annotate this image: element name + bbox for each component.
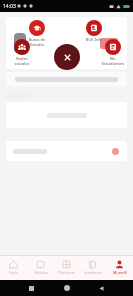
staticText: Académico bbox=[84, 270, 102, 275]
button[interactable]: Noticias bbox=[28, 255, 53, 280]
button[interactable]: Atrás bbox=[99, 286, 104, 291]
button[interactable]: Rutas de Estudio bbox=[20, 20, 54, 47]
staticText: 14:03 bbox=[3, 3, 16, 10]
button[interactable] bbox=[6, 141, 127, 161]
button[interactable]: BUS Info bbox=[77, 20, 111, 42]
button[interactable]: Inicio bbox=[64, 285, 70, 291]
staticText: Redes sociales bbox=[5, 56, 39, 66]
staticText: BUS Info bbox=[77, 37, 111, 42]
button[interactable]: Directorio bbox=[54, 255, 79, 280]
staticText: Inicio bbox=[9, 270, 18, 275]
button[interactable]: Redes sociales bbox=[5, 39, 39, 66]
button[interactable]: No. Estudiantes bbox=[96, 39, 130, 66]
staticText: Mi perfil bbox=[113, 270, 127, 275]
staticText: Noticias bbox=[34, 270, 48, 275]
staticText: Rutas de Estudio bbox=[20, 37, 54, 47]
button[interactable]: Académico bbox=[80, 255, 105, 280]
button[interactable] bbox=[6, 17, 127, 69]
button[interactable]: Mi perfil bbox=[107, 255, 132, 280]
button[interactable]: Cerrar menú bbox=[54, 44, 80, 70]
button[interactable] bbox=[6, 102, 127, 128]
button[interactable]: Inicio bbox=[1, 255, 26, 280]
staticText: No. Estudiantes bbox=[96, 56, 130, 66]
staticText: Directorio bbox=[58, 270, 75, 275]
